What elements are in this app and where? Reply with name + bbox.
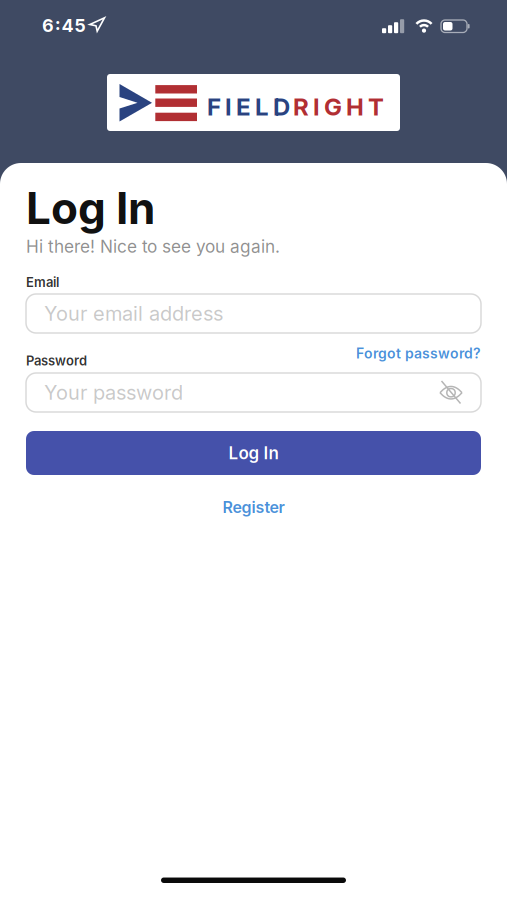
staticText: Log In — [228, 443, 278, 463]
staticText: Your email address — [44, 301, 223, 326]
staticText: Register — [222, 497, 284, 517]
staticText: F I E L D — [207, 92, 290, 121]
button[interactable]: Register — [222, 497, 284, 517]
button[interactable]: Log In — [26, 431, 481, 475]
button[interactable]: Password, secure text field — [26, 373, 481, 412]
button[interactable]: Forgot password? — [356, 345, 481, 362]
staticText: 6:45 — [42, 15, 86, 36]
staticText: Log In — [26, 181, 155, 235]
staticText: Email — [26, 274, 59, 290]
staticText: Hi there! Nice to see you again. — [26, 236, 280, 257]
staticText: R I G H T — [293, 92, 384, 121]
staticText: Password — [26, 353, 87, 369]
staticText: Your password — [44, 380, 183, 405]
button[interactable]: Show password — [439, 380, 463, 404]
button[interactable]: Email, text field — [26, 294, 481, 333]
staticText: Forgot password? — [356, 345, 481, 362]
